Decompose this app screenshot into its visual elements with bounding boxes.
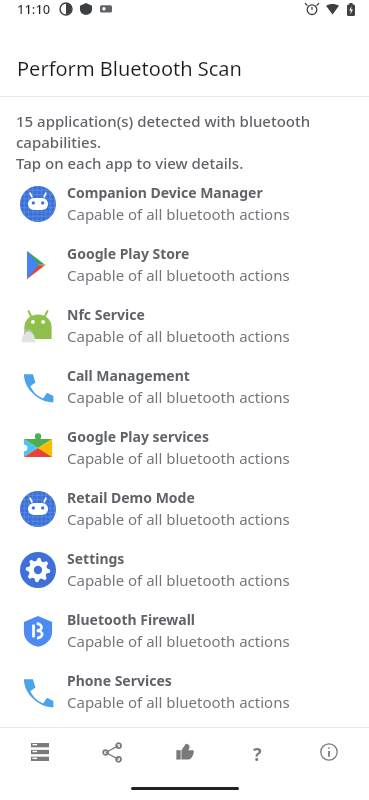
button[interactable]: Bluetooth Firewall bbox=[0, 600, 369, 661]
staticText: Companion Device Manager bbox=[67, 183, 263, 202]
button[interactable]: Call Management bbox=[0, 356, 369, 417]
staticText: 15 application(s) detected with bluetoot… bbox=[16, 111, 311, 153]
staticText: Google Play services bbox=[67, 427, 209, 446]
staticText: Nfc Service bbox=[67, 305, 145, 324]
staticText: 11:10 bbox=[17, 0, 51, 18]
staticText: Capable of all bluetooth actions bbox=[67, 631, 290, 651]
button[interactable]: Retail Demo Mode bbox=[0, 478, 369, 539]
staticText: Capable of all bluetooth actions bbox=[67, 448, 290, 468]
staticText: Phone Services bbox=[67, 671, 172, 690]
button[interactable]: Info bbox=[297, 728, 361, 776]
staticText: ? bbox=[253, 742, 262, 762]
button[interactable]: Nfc Service bbox=[0, 295, 369, 356]
button[interactable]: Google Play Store bbox=[0, 234, 369, 295]
button[interactable]: Share bbox=[80, 728, 144, 776]
button[interactable]: Help bbox=[225, 728, 289, 776]
staticText: Capable of all bluetooth actions bbox=[67, 570, 290, 590]
staticText: Bluetooth Firewall bbox=[67, 610, 195, 629]
staticText: Retail Demo Mode bbox=[67, 488, 195, 507]
staticText: Capable of all bluetooth actions bbox=[67, 692, 290, 712]
staticText: Tap on each app to view details. bbox=[16, 153, 244, 173]
button[interactable]: Like bbox=[153, 728, 217, 776]
staticText: Capable of all bluetooth actions bbox=[67, 326, 290, 346]
button[interactable]: Google Play services bbox=[0, 417, 369, 478]
staticText: Capable of all bluetooth actions bbox=[67, 265, 290, 285]
button[interactable]: Phone Services bbox=[0, 661, 369, 722]
staticText: Perform Bluetooth Scan bbox=[17, 55, 242, 82]
staticText: Capable of all bluetooth actions bbox=[67, 387, 290, 407]
staticText: Google Play Store bbox=[67, 244, 190, 263]
staticText: Settings bbox=[67, 549, 125, 568]
button[interactable]: Settings bbox=[0, 539, 369, 600]
button[interactable]: Companion Device Manager bbox=[0, 173, 369, 234]
staticText: Capable of all bluetooth actions bbox=[67, 204, 290, 224]
staticText: Capable of all bluetooth actions bbox=[67, 509, 290, 529]
staticText: Call Management bbox=[67, 366, 190, 385]
button[interactable]: List bbox=[8, 728, 72, 776]
